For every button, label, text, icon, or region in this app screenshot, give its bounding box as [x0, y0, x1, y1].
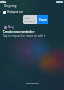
button[interactable]: Pause	[37, 15, 48, 24]
staticText: Screen recording	[24, 17, 34, 23]
button[interactable]: Hotspot on	[3, 10, 23, 14]
staticText: Create new reminder	[3, 30, 35, 34]
staticText: Ongoing	[4, 4, 17, 8]
staticText: Tap to respond or move on with it	[3, 34, 46, 38]
staticText: Hotspot on	[7, 10, 23, 14]
staticText: Ring Reminder	[8, 25, 26, 29]
staticText: Pause	[39, 18, 47, 22]
button[interactable]: Ring Reminder	[4, 25, 26, 29]
other: Home	[26, 83, 39, 84]
